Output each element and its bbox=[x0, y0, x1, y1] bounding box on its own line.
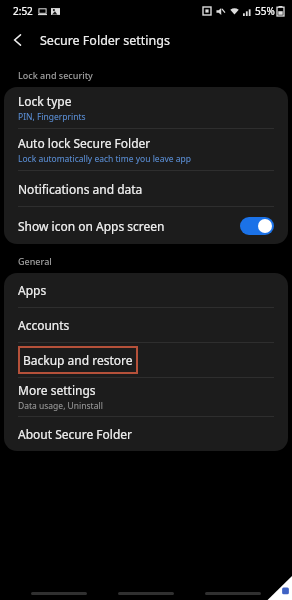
staticText: Apps bbox=[18, 282, 47, 298]
button[interactable]: About Secure Folder bbox=[4, 417, 288, 451]
staticText: Lock type bbox=[18, 93, 72, 109]
button[interactable]: Apps bbox=[4, 273, 288, 307]
button[interactable]: Lock type bbox=[4, 87, 288, 128]
staticText: General bbox=[18, 255, 52, 267]
staticText: More settings bbox=[18, 382, 96, 398]
button[interactable]: Show icon on Apps screen toggle bbox=[240, 217, 274, 235]
staticText: Lock and security bbox=[18, 69, 93, 81]
staticText: About Secure Folder bbox=[18, 426, 133, 442]
staticText: Accounts bbox=[18, 317, 70, 333]
button[interactable]: Navigation bbox=[205, 592, 261, 595]
staticText: Backup and restore bbox=[23, 352, 133, 368]
staticText: Data usage, Uninstall bbox=[18, 400, 103, 412]
button[interactable]: Auto lock Secure Folder bbox=[4, 129, 288, 170]
button[interactable]: More settings bbox=[4, 378, 288, 416]
button[interactable]: Navigation bbox=[31, 592, 87, 595]
button[interactable]: Show icon on Apps screen bbox=[4, 207, 288, 244]
staticText: Notifications and data bbox=[18, 181, 143, 197]
button[interactable]: Navigation bbox=[118, 592, 174, 595]
staticText: 2:52 bbox=[13, 4, 33, 18]
button[interactable]: Back bbox=[0, 22, 36, 58]
staticText: Auto lock Secure Folder bbox=[18, 135, 151, 151]
staticText: Lock automatically each time you leave a… bbox=[18, 153, 191, 165]
staticText: Show icon on Apps screen bbox=[18, 218, 165, 234]
staticText: 55% bbox=[255, 4, 275, 18]
button[interactable]: Backup and restore bbox=[4, 343, 288, 377]
button[interactable]: Accounts bbox=[4, 308, 288, 342]
staticText: Secure Folder settings bbox=[40, 32, 170, 49]
button[interactable]: Notifications and data bbox=[4, 171, 288, 206]
staticText: PIN, Fingerprints bbox=[18, 111, 86, 123]
